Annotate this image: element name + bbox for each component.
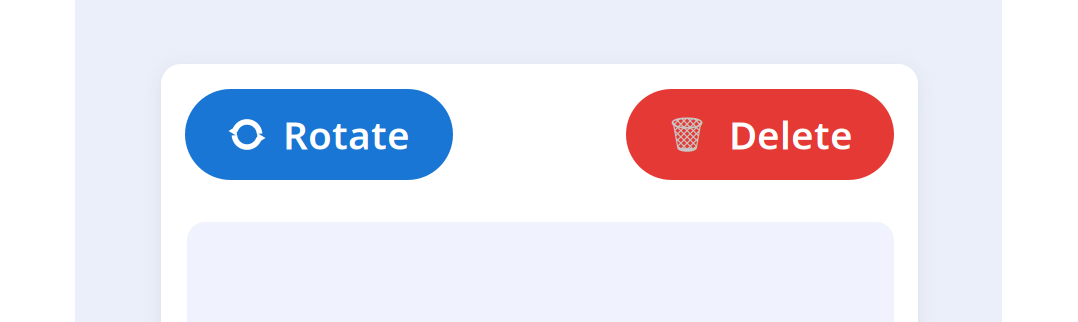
- staticText: 🗑: [666, 115, 708, 154]
- staticText: Rotate: [283, 109, 410, 160]
- button[interactable]: 🗑: [626, 89, 894, 180]
- button[interactable]: Rotate: [185, 89, 453, 180]
- staticText: Delete: [729, 109, 853, 160]
